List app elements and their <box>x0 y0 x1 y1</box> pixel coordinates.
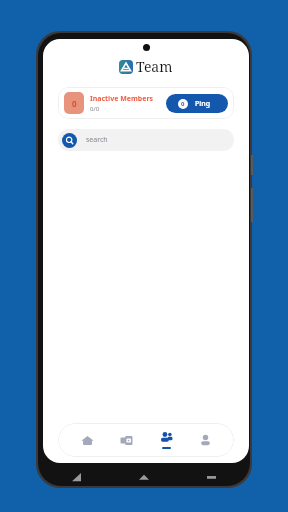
staticText: 0/0 <box>90 105 100 113</box>
staticText: Inactive Members <box>90 94 154 104</box>
staticText: search <box>86 135 108 145</box>
button[interactable]: Profile <box>187 424 223 456</box>
staticText: 0 <box>181 100 185 108</box>
staticText: 0 <box>72 98 77 109</box>
other: Home <box>139 472 149 482</box>
button[interactable]: Search <box>58 129 234 151</box>
button[interactable]: Home <box>69 424 105 456</box>
other: Back <box>72 473 81 482</box>
button[interactable]: 0 <box>58 87 234 119</box>
other: Recents <box>207 473 216 482</box>
button[interactable]: Wallet <box>108 424 144 456</box>
other: Search <box>62 133 77 148</box>
staticText: Ping <box>195 99 211 109</box>
button[interactable]: Team <box>148 424 184 456</box>
staticText: Team <box>136 57 173 76</box>
button[interactable]: 0 <box>166 94 228 113</box>
